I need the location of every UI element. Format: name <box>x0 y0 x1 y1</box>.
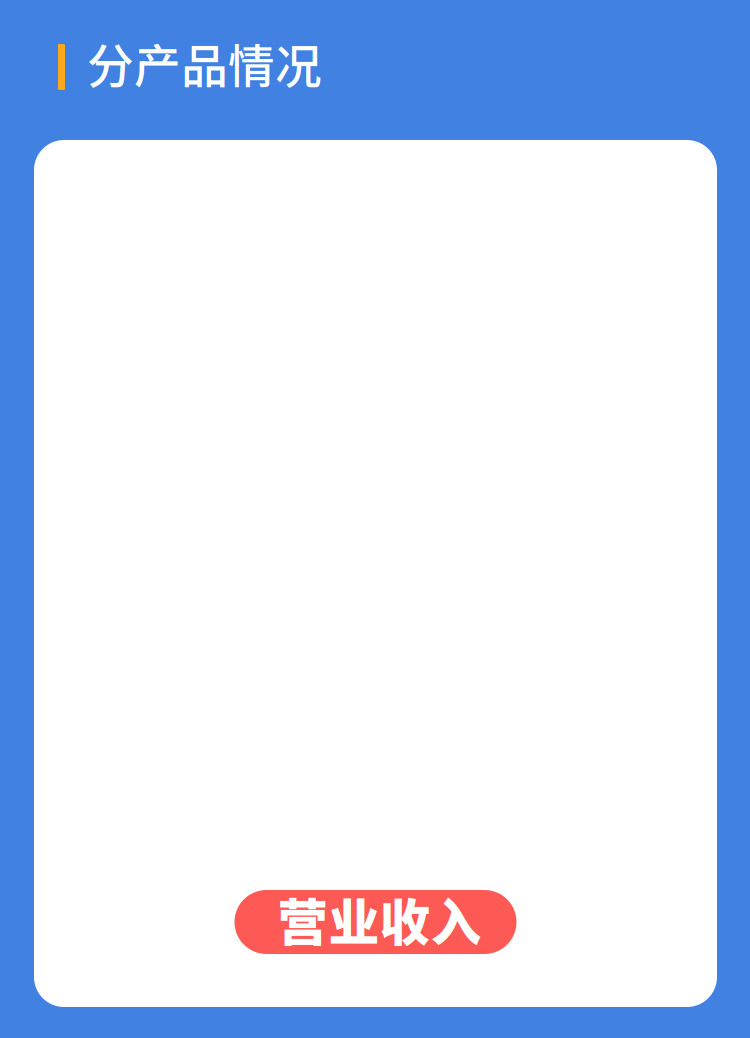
button[interactable]: 营业收入 <box>234 890 516 954</box>
staticText: 营业收入 <box>277 882 481 956</box>
staticText: 分产品情况 <box>87 29 322 97</box>
